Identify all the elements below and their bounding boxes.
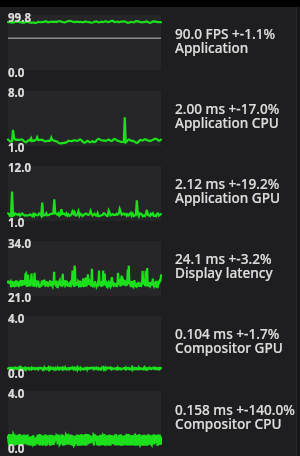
button[interactable]: Application GPU chart xyxy=(8,166,161,221)
staticText: 21.0 xyxy=(8,290,31,306)
staticText: 8.0 xyxy=(8,85,25,101)
staticText: 0.0 xyxy=(8,366,25,382)
button[interactable]: Display latency chart xyxy=(8,241,161,296)
staticText: 4.0 xyxy=(8,311,25,327)
button[interactable]: Application CPU chart xyxy=(8,91,161,146)
button[interactable]: 0.158 ms +-140.0% Compositor CPU xyxy=(175,400,295,433)
button[interactable]: Compositor GPU chart xyxy=(8,316,161,371)
staticText: 1.0 xyxy=(8,140,25,156)
button[interactable]: 90.0 FPS +-1.1% Application xyxy=(175,24,276,57)
staticText: 99.8 xyxy=(8,10,31,26)
staticText: 0.0 xyxy=(8,441,25,456)
staticText: 0.0 xyxy=(8,65,25,81)
button[interactable]: 2.00 ms +-17.0% Application CPU xyxy=(175,99,280,132)
button[interactable]: Compositor CPU chart xyxy=(8,391,161,446)
button[interactable]: Application chart xyxy=(8,15,161,70)
button[interactable]: 0.104 ms +-1.7% Compositor GPU xyxy=(175,324,283,357)
staticText: 34.0 xyxy=(8,236,31,252)
staticText: 1.0 xyxy=(8,215,25,231)
button[interactable]: 2.12 ms +-19.2% Application GPU xyxy=(175,174,280,207)
staticText: 4.0 xyxy=(8,386,25,402)
staticText: 12.0 xyxy=(8,160,31,176)
button[interactable]: 24.1 ms +-3.2% Display latency xyxy=(175,249,273,282)
